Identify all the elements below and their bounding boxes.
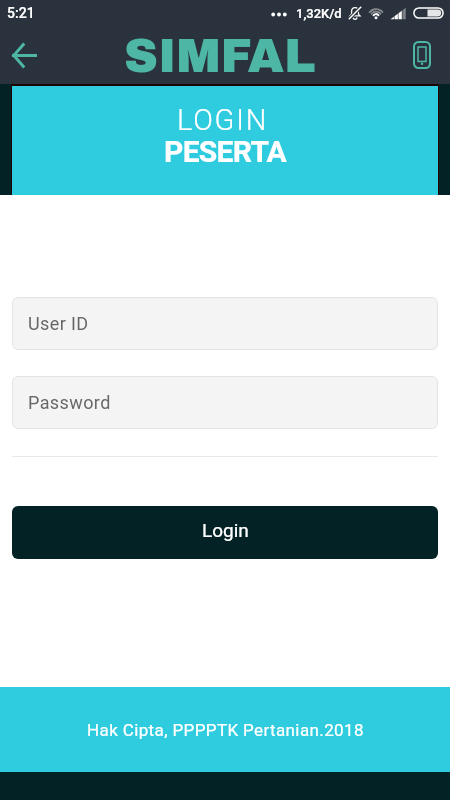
staticText: PESERTA bbox=[164, 134, 287, 169]
button[interactable]: Device info bbox=[396, 29, 448, 81]
button[interactable]: User ID bbox=[12, 297, 438, 350]
staticText: 5:21 bbox=[7, 5, 35, 21]
staticText: User ID bbox=[28, 313, 89, 334]
staticText: Hak Cipta, PPPPTK Pertanian.2018 bbox=[87, 720, 364, 740]
button[interactable]: Password bbox=[12, 376, 438, 429]
staticText: LOGIN bbox=[177, 103, 269, 137]
staticText: Login bbox=[202, 519, 249, 541]
button[interactable]: Login bbox=[12, 506, 438, 559]
staticText: Password bbox=[28, 392, 111, 413]
button[interactable]: Back bbox=[1, 32, 47, 78]
staticText: SIMFAL bbox=[124, 31, 316, 82]
staticText: 1,32K/d bbox=[296, 6, 342, 21]
